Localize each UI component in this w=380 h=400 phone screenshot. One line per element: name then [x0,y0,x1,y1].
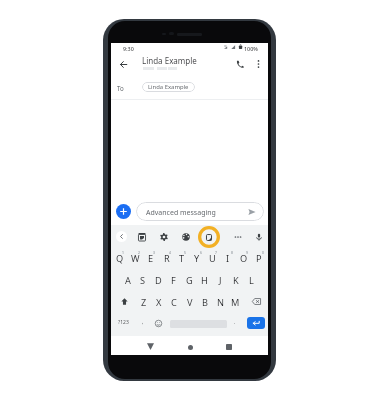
button[interactable]: X [151,292,166,312]
staticText: R [164,252,170,265]
button[interactable]: Clipboard [135,230,149,244]
button[interactable]: Enter [247,317,265,329]
staticText: 8 [231,250,233,255]
button[interactable]: Linda Example [142,82,195,92]
button[interactable]: L [244,270,259,290]
staticText: 4 [169,250,171,255]
staticText: J [219,274,222,287]
button[interactable]: B [197,292,212,312]
button[interactable]: More options [249,54,268,74]
staticText: F [171,274,176,287]
staticText: Y [194,252,200,265]
button[interactable]: F [166,270,181,290]
button[interactable]: Z [136,292,151,312]
staticText: ?123 [118,319,129,326]
staticText: Q [116,252,124,265]
button[interactable]: Add attachment [116,204,131,219]
button[interactable]: W [128,248,143,268]
button[interactable]: Call [229,54,250,74]
staticText: V [187,296,193,309]
staticText: N [217,296,224,309]
staticText: E [148,252,154,265]
staticText: . [234,319,236,326]
staticText: 5 [184,250,186,255]
button[interactable]: Q [112,248,127,268]
staticText: 6 [200,250,202,255]
button[interactable]: E [143,248,158,268]
button[interactable]: T [174,248,189,268]
staticText: 0 [262,250,264,255]
staticText: 3 [153,250,155,255]
staticText: 100% [244,45,258,52]
button[interactable]: Home [183,340,197,354]
button[interactable]: More [231,230,245,244]
button[interactable]: Back [143,339,157,353]
button[interactable]: Themes [179,230,193,244]
button[interactable]: Recent apps [222,340,236,354]
button[interactable]: P [251,248,266,268]
button[interactable]: U [205,248,220,268]
staticText: L [249,274,254,287]
button[interactable]: Advanced messaging [136,202,264,221]
staticText: C [171,296,177,309]
staticText: H [201,274,208,287]
staticText: Advanced messaging [146,208,216,218]
button[interactable]: Settings [157,230,171,244]
staticText: K [233,274,239,287]
button[interactable]: I [220,248,235,268]
staticText: G [186,274,193,287]
staticText: P [256,252,262,265]
button[interactable]: Backspace [250,295,262,307]
staticText: 1 [122,250,124,255]
button[interactable]: H [197,270,212,290]
staticText: D [155,274,162,287]
button[interactable]: O [236,248,251,268]
staticText: Linda Example [142,55,197,66]
button[interactable]: Emoji [153,318,164,329]
button[interactable]: Back [116,231,127,242]
button[interactable]: ?123 [115,317,132,328]
button[interactable]: S [135,270,150,290]
staticText: T [179,252,185,265]
staticText: Linda Example [148,83,189,91]
staticText: 9:30 [123,45,134,52]
button[interactable]: Stickers [198,226,220,248]
staticText: Z [141,296,147,309]
button[interactable]: J [213,270,228,290]
staticText: To [117,84,124,92]
staticText: 7 [215,250,217,255]
button[interactable]: D [151,270,166,290]
button[interactable]: M [228,292,243,312]
staticText: B [202,296,208,309]
staticText: , [142,319,144,326]
button[interactable]: Back [113,54,134,74]
staticText: O [240,252,248,265]
staticText: W [131,252,140,265]
staticText: S [140,274,146,287]
button[interactable]: N [213,292,228,312]
button[interactable]: R [159,248,174,268]
staticText: X [156,296,162,309]
button[interactable]: Y [189,248,204,268]
button[interactable]: A [120,270,135,290]
button[interactable]: Voice input [252,230,266,244]
staticText: A [125,274,131,287]
staticText: U [209,252,216,265]
staticText: 2 [138,250,140,255]
staticText: I [226,252,230,265]
button[interactable]: K [228,270,243,290]
button[interactable]: C [166,292,181,312]
button[interactable]: G [182,270,197,290]
staticText: 9 [246,250,248,255]
staticText: M [231,296,240,309]
button[interactable]: Shift [118,295,130,307]
button[interactable]: V [182,292,197,312]
